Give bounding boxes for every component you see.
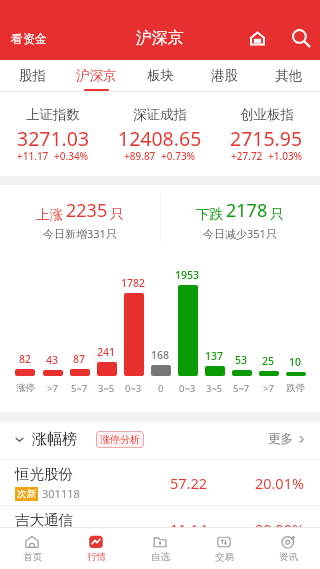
staticText: 上证指数 — [26, 106, 80, 123]
staticText: 11.14 — [147, 519, 207, 539]
button[interactable]: 更多 — [268, 431, 306, 447]
staticText: 吉大通信 — [15, 511, 73, 529]
staticText: 1782 — [121, 276, 146, 290]
button[interactable]: 涨幅榜 — [14, 430, 77, 449]
staticText: 板块 — [147, 67, 174, 84]
button[interactable]: 恒光股份 — [0, 460, 320, 505]
staticText: 只 — [270, 206, 284, 223]
staticText: 3~5 — [98, 382, 115, 395]
staticText: 创业板指 — [240, 106, 294, 123]
staticText: 2235 — [66, 198, 108, 223]
button[interactable]: 自选 — [128, 528, 192, 569]
staticText: 涨停分析 — [100, 433, 140, 446]
button[interactable]: 沪深京 — [64, 60, 128, 91]
staticText: 跌停 — [286, 382, 305, 394]
staticText: 57.22 — [147, 473, 207, 493]
staticText: +0.34% — [54, 149, 89, 163]
staticText: 沪深京 — [136, 28, 184, 48]
staticText: 今日减少351只 — [203, 226, 277, 241]
staticText: 3~5 — [206, 382, 223, 395]
staticText: 137 — [205, 349, 224, 363]
button[interactable]: 上证指数 — [0, 92, 106, 176]
staticText: +89.87 — [124, 149, 156, 163]
staticText: 25 — [262, 354, 275, 368]
staticText: 次新 — [17, 488, 36, 500]
staticText: 交易 — [215, 551, 234, 563]
button[interactable]: Home — [245, 26, 269, 50]
staticText: 241 — [97, 345, 116, 359]
staticText: 53 — [235, 353, 248, 367]
staticText: 12408.65 — [118, 125, 202, 152]
button[interactable]: Search — [289, 26, 313, 50]
button[interactable]: 股指 — [0, 60, 64, 91]
staticText: +1.03% — [268, 149, 303, 163]
staticText: 0 — [158, 382, 164, 395]
button[interactable]: 下跌 — [160, 185, 320, 246]
staticText: +27.72 — [231, 149, 263, 163]
staticText: 000988 — [15, 532, 53, 547]
staticText: 10 — [289, 355, 302, 369]
staticText: 1953 — [175, 268, 200, 282]
staticText: 上涨 — [36, 206, 63, 223]
button[interactable]: 板块 — [128, 60, 192, 91]
button[interactable]: 其他 — [256, 60, 320, 91]
staticText: +0.73% — [161, 149, 196, 163]
staticText: 43 — [46, 353, 59, 367]
staticText: 港股 — [211, 67, 238, 84]
staticText: 20.00% — [252, 519, 304, 539]
staticText: 今日新增331只 — [43, 226, 117, 241]
staticText: >7 — [47, 382, 58, 395]
staticText: 涨停 — [16, 382, 35, 394]
staticText: 2178 — [226, 198, 268, 223]
staticText: 深证成指 — [133, 106, 187, 123]
staticText: 行情 — [87, 551, 106, 563]
staticText: 301118 — [42, 486, 80, 501]
staticText: 沪深京 — [76, 67, 117, 84]
staticText: 更多 — [268, 431, 293, 447]
button[interactable]: 港股 — [192, 60, 256, 91]
staticText: 下跌 — [196, 206, 223, 223]
staticText: 168 — [151, 348, 170, 362]
staticText: 82 — [19, 352, 32, 366]
staticText: 87 — [73, 352, 86, 366]
button[interactable]: 吉大通信 — [0, 506, 320, 551]
button[interactable]: 创业板指 — [213, 92, 320, 176]
staticText: +11.17 — [17, 149, 49, 163]
staticText: 股指 — [19, 67, 46, 84]
button[interactable]: 交易 — [192, 528, 256, 569]
staticText: 5~7 — [233, 382, 250, 395]
staticText: 只 — [110, 206, 124, 223]
staticText: 自选 — [151, 551, 170, 563]
staticText: >7 — [263, 382, 274, 395]
button[interactable]: 深证成指 — [106, 92, 213, 176]
button[interactable]: 资讯 — [256, 528, 320, 569]
button[interactable]: 看资金 — [7, 27, 51, 50]
staticText: 5~7 — [71, 382, 88, 395]
button[interactable]: 行情 — [64, 528, 128, 569]
staticText: 涨幅榜 — [32, 430, 77, 449]
staticText: 恒光股份 — [15, 465, 73, 483]
staticText: 2715.95 — [230, 125, 303, 152]
staticText: 3271.03 — [17, 125, 90, 152]
staticText: 看资金 — [11, 31, 47, 46]
staticText: 0~3 — [179, 382, 196, 395]
staticText: 首页 — [23, 551, 42, 563]
staticText: 其他 — [275, 67, 302, 84]
button[interactable]: 上涨 — [0, 185, 160, 246]
button[interactable]: 首页 — [0, 528, 64, 569]
staticText: 0~3 — [125, 382, 142, 395]
staticText: 资讯 — [279, 551, 298, 563]
button[interactable]: 涨停分析 — [96, 431, 144, 448]
staticText: 20.01% — [252, 473, 304, 493]
